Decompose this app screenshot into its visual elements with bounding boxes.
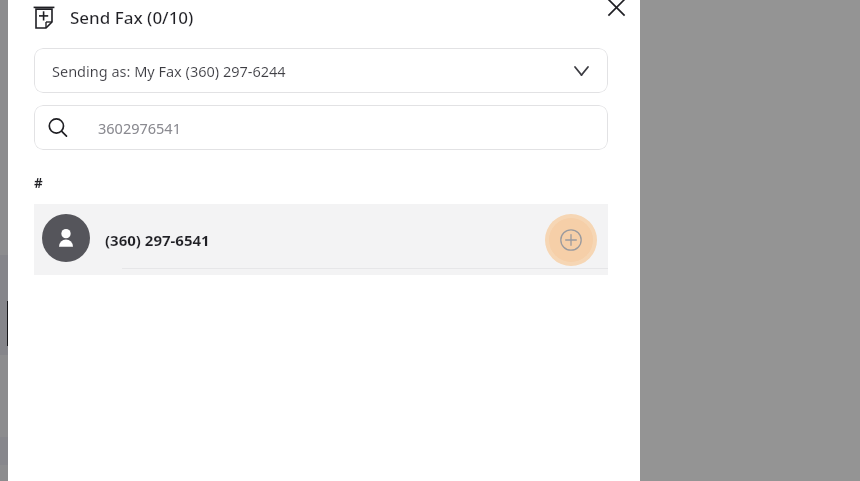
button[interactable]: Add recipient (545, 214, 597, 266)
staticText: (360) 297-6541 (105, 230, 210, 250)
button[interactable]: Send Fax (0/10) (34, 0, 194, 34)
button[interactable]: (360) 297-6541 (34, 204, 608, 275)
staticText: 3602976541 (98, 118, 181, 138)
staticText: # (34, 174, 43, 192)
staticText: Sending as: My Fax (360) 297-6244 (52, 61, 286, 81)
button[interactable]: Sending as: My Fax (360) 297-6244 (34, 48, 608, 93)
button[interactable]: Close (596, 0, 636, 24)
button[interactable]: 3602976541 (34, 105, 608, 150)
staticText: Send Fax (0/10) (70, 6, 194, 29)
